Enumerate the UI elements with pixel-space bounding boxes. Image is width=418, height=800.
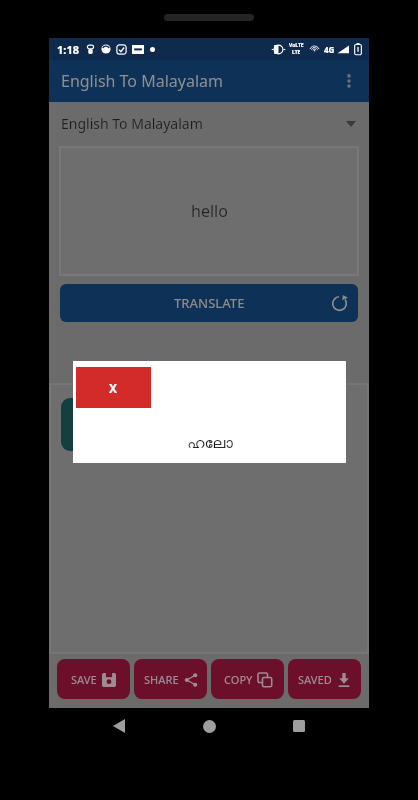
button[interactable]: hello (60, 147, 358, 275)
staticText: TRANSLATE (174, 294, 245, 312)
staticText: SAVED (298, 672, 332, 687)
staticText: SAVE (71, 672, 97, 687)
button[interactable]: Recent apps (279, 708, 319, 744)
button[interactable]: LISTEN (61, 398, 133, 451)
staticText: COPY (224, 672, 253, 687)
staticText: 1:18 (57, 42, 79, 57)
staticText: hello (191, 200, 228, 222)
button[interactable]: X (76, 367, 151, 408)
button[interactable]: Refresh (328, 292, 350, 314)
staticText: 4G (324, 44, 335, 55)
staticText: LTE (292, 49, 301, 56)
staticText: ഹലോ (187, 436, 233, 451)
staticText: English To Malayalam (61, 114, 203, 133)
button[interactable]: English To Malayalam (50, 102, 368, 145)
button[interactable]: English To Malayalam (49, 60, 369, 102)
staticText: VoLTE (289, 42, 304, 49)
button[interactable]: More options (329, 61, 369, 101)
button[interactable]: Back (99, 708, 139, 744)
button[interactable]: SAVE (57, 659, 130, 699)
staticText: English To Malayalam (61, 70, 224, 92)
button[interactable]: Home (189, 708, 229, 744)
button[interactable]: SHARE (134, 659, 207, 699)
button[interactable]: SAVED (288, 659, 361, 699)
button[interactable]: TRANSLATE (60, 284, 358, 322)
staticText: SHARE (144, 672, 179, 687)
staticText: X (109, 380, 118, 396)
staticText: ഹലോ (186, 426, 232, 441)
button[interactable]: COPY (211, 659, 284, 699)
